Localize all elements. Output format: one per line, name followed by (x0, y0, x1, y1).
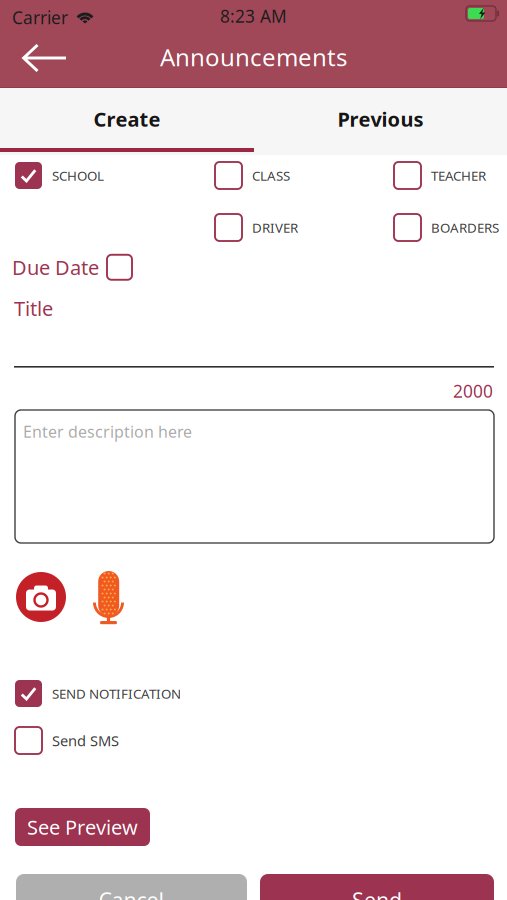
staticText: Cancel (98, 886, 164, 900)
staticText: Carrier (12, 6, 68, 29)
staticText: DRIVER (252, 219, 298, 236)
staticText: 8:23 AM (220, 4, 287, 27)
staticText: Previous (337, 106, 423, 132)
button[interactable]: CLASS (215, 162, 290, 189)
staticText: SCHOOL (52, 167, 104, 184)
staticText: SEND NOTIFICATION (52, 685, 181, 702)
button[interactable]: Create (0, 88, 254, 150)
staticText: Announcements (160, 41, 347, 73)
button[interactable]: SEND NOTIFICATION (15, 680, 181, 707)
staticText: CLASS (252, 167, 290, 184)
button[interactable]: SCHOOL (15, 162, 104, 189)
button[interactable]: Due Date (12, 254, 132, 281)
button[interactable]: Take photo (16, 572, 66, 622)
staticText: Create (93, 106, 160, 132)
staticText: Send SMS (52, 731, 119, 750)
staticText: Title (14, 295, 53, 322)
button[interactable]: BOARDERS (394, 214, 499, 241)
staticText: TEACHER (431, 167, 486, 184)
staticText: BOARDERS (431, 219, 499, 236)
button[interactable]: Cancel (16, 874, 247, 900)
button[interactable]: Previous (254, 88, 507, 150)
staticText: 2000 (453, 379, 493, 402)
staticText: Due Date (12, 254, 99, 281)
button[interactable]: Send (260, 874, 494, 900)
button[interactable]: Record audio (93, 571, 124, 626)
button[interactable]: TEACHER (394, 162, 486, 189)
staticText: Enter description here (23, 421, 192, 442)
button[interactable]: Send SMS (15, 727, 119, 754)
button[interactable]: Back (14, 36, 76, 80)
staticText: Send (352, 886, 402, 900)
button[interactable]: See Preview (15, 808, 150, 846)
staticText: See Preview (27, 814, 138, 840)
button[interactable]: DRIVER (215, 214, 298, 241)
